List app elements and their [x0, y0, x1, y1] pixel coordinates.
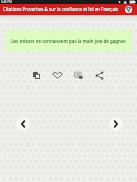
staticText: Les trésors ne connaissent pas la main j… — [11, 38, 126, 44]
button[interactable]: Next — [109, 117, 123, 131]
staticText: 5:45 PM — [1, 0, 12, 4]
button[interactable]: Previous — [16, 117, 30, 131]
staticText: Citations Proverbes & sur la confiance e… — [3, 6, 119, 12]
button[interactable]: Share — [91, 67, 107, 83]
button[interactable]: Favorite — [49, 67, 65, 83]
button[interactable]: Les trésors ne connaissent pas la main j… — [5, 30, 132, 52]
button[interactable]: Filter — [125, 6, 132, 13]
button[interactable]: Copy — [28, 67, 44, 83]
button[interactable]: Save image — [70, 67, 86, 83]
